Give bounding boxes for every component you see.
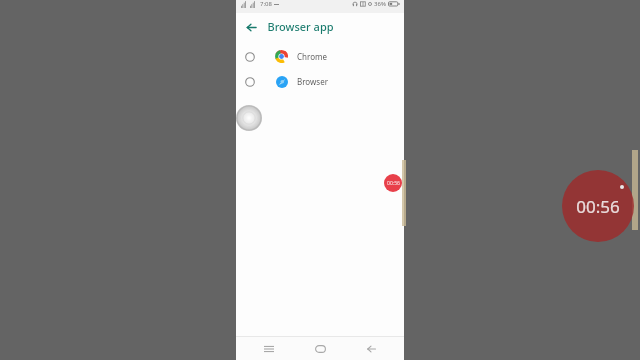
other: Recording timer 00:56	[562, 170, 634, 242]
button[interactable]: Chrome	[236, 44, 404, 69]
staticText: 7:08	[260, 0, 272, 8]
staticText: 00:56	[576, 195, 620, 218]
button[interactable]: Recents	[258, 338, 280, 360]
other: Stop recording	[384, 174, 402, 192]
staticText: 00:56	[387, 180, 400, 187]
button[interactable]: Back	[242, 18, 260, 36]
button[interactable]: Back	[360, 338, 382, 360]
button[interactable]: Home	[309, 338, 331, 360]
staticText: Browser app	[267, 19, 334, 34]
staticText: Browser	[297, 76, 328, 87]
staticText: 36%	[374, 0, 386, 8]
button[interactable]: Browser	[236, 69, 404, 94]
button[interactable]: Assistive touch	[236, 105, 262, 131]
staticText: Chrome	[297, 51, 327, 62]
